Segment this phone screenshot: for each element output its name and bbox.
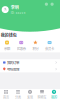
button[interactable]: 我的订单 [0, 59, 60, 66]
staticText: 李明 [11, 4, 19, 10]
button[interactable]: 发现 [24, 89, 36, 100]
staticText: 首页 [3, 95, 9, 99]
button[interactable]: 地址管理 [0, 66, 60, 72]
button[interactable]: Settings [49, 1, 55, 7]
button[interactable]: 我的 [48, 89, 60, 100]
button[interactable]: 分类 [12, 89, 24, 100]
button[interactable]: 购物车 [36, 89, 48, 100]
staticText: 会员卡 [45, 46, 54, 51]
staticText: 地址管理 [7, 67, 19, 72]
button[interactable]: Messages [44, 1, 49, 7]
staticText: ID: 88219 [11, 11, 26, 15]
button[interactable]: 余额 [0, 41, 14, 51]
button[interactable]: 积分 [28, 41, 42, 51]
staticText: 购物车 [37, 95, 46, 99]
button[interactable]: 首页 [0, 89, 12, 100]
staticText: 分类 [15, 95, 21, 99]
staticText: 我的 [51, 95, 57, 99]
staticText: 我的订单 [7, 60, 19, 65]
button[interactable]: 李明 [2, 5, 36, 14]
button[interactable]: 优惠券 [14, 41, 28, 51]
staticText: 我的钱包 [1, 32, 17, 38]
staticText: 优惠券 [17, 46, 26, 51]
staticText: 发现 [27, 95, 33, 99]
staticText: 余额 [4, 46, 10, 51]
staticText: 积分 [32, 46, 38, 51]
button[interactable]: 会员卡 [42, 41, 57, 51]
